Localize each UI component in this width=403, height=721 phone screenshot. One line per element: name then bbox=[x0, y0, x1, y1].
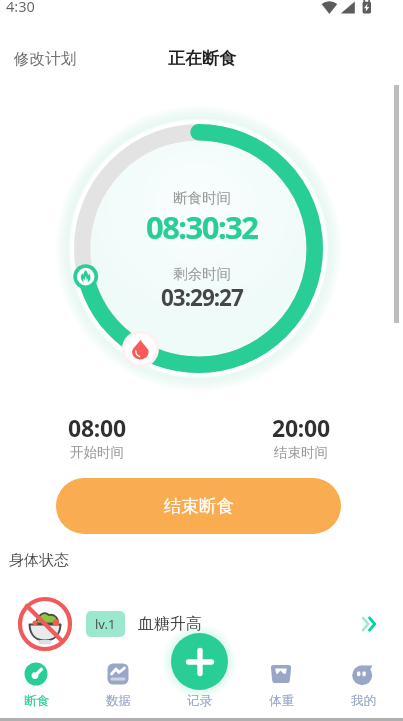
staticText: 记录 bbox=[187, 693, 212, 709]
staticText: 我的 bbox=[351, 693, 376, 709]
staticText: 修改计划 bbox=[14, 49, 76, 69]
staticText: 体重 bbox=[269, 693, 294, 709]
staticText: lv.1 bbox=[95, 615, 116, 633]
staticText: 数据 bbox=[106, 693, 131, 709]
staticText: 08:00 bbox=[68, 412, 126, 443]
staticText: 03:29:27 bbox=[161, 282, 243, 313]
staticText: 正在断食 bbox=[168, 48, 236, 69]
button[interactable]: 我的 bbox=[329, 655, 397, 713]
staticText: 断食 bbox=[24, 693, 49, 709]
button[interactable]: 修改计划 bbox=[6, 44, 84, 74]
staticText: 身体状态 bbox=[9, 551, 69, 570]
staticText: 08:30:32 bbox=[146, 206, 258, 248]
button[interactable]: 结束断食 bbox=[56, 478, 341, 534]
staticText: 剩余时间 bbox=[173, 265, 231, 283]
staticText: 20:00 bbox=[272, 412, 330, 443]
staticText: 断食时间 bbox=[173, 189, 231, 207]
button[interactable]: 断食 bbox=[2, 655, 70, 713]
staticText: 开始时间 bbox=[70, 444, 124, 461]
button[interactable]: lv.1 bbox=[0, 598, 403, 650]
staticText: 结束断食 bbox=[164, 495, 234, 517]
button[interactable]: 添加记录 bbox=[171, 633, 228, 690]
staticText: 血糖升高 bbox=[138, 614, 202, 634]
button[interactable]: 记录 bbox=[165, 655, 233, 713]
staticText: 4:30 bbox=[6, 0, 35, 16]
staticText: 结束时间 bbox=[274, 444, 328, 461]
button[interactable]: 数据 bbox=[84, 655, 152, 713]
button[interactable]: 体重 bbox=[247, 655, 315, 713]
